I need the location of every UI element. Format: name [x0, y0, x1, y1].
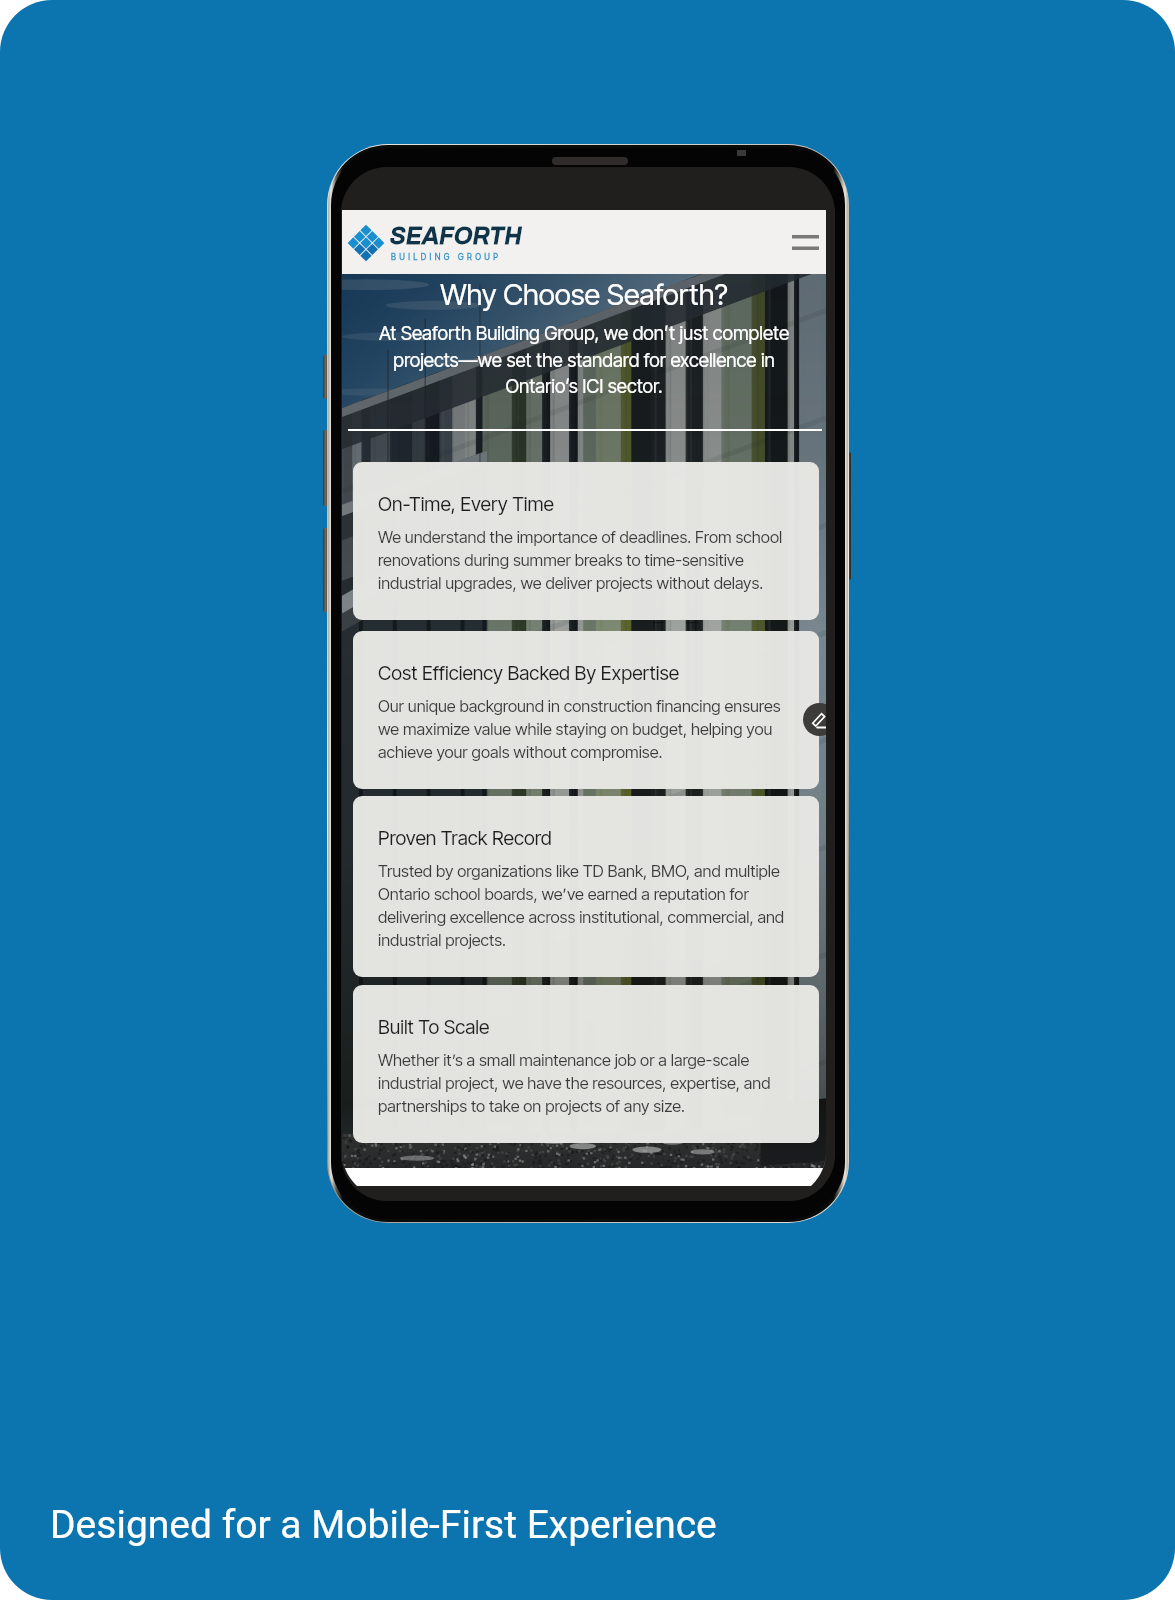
staticText: Our unique background in construction fi… [378, 696, 805, 762]
button[interactable]: Proven Track Record [353, 796, 819, 977]
staticText: Why Choose Seaforth? [342, 277, 826, 312]
staticText: On-Time, Every Time [378, 492, 554, 516]
button[interactable]: Open menu [785, 222, 825, 262]
staticText: We understand the importance of deadline… [378, 527, 805, 593]
staticText: BUILDING GROUP [391, 252, 502, 262]
staticText: Built To Scale [378, 1015, 490, 1039]
staticText: At Seaforth Building Group, we don’t jus… [358, 322, 810, 397]
button[interactable]: Built To Scale [353, 985, 819, 1143]
staticText: Whether it’s a small maintenance job or … [378, 1050, 805, 1116]
staticText: Cost Efficiency Backed By Expertise [378, 661, 680, 685]
staticText: SEAFORTH [390, 223, 523, 249]
button[interactable]: Cost Efficiency Backed By Expertise [353, 631, 819, 789]
staticText: Trusted by organizations like TD Bank, B… [378, 861, 805, 950]
button[interactable]: On-Time, Every Time [353, 462, 819, 620]
staticText: Designed for a Mobile-First Experience [50, 1502, 717, 1548]
button[interactable]: Edit [803, 703, 826, 736]
staticText: Proven Track Record [378, 826, 552, 850]
